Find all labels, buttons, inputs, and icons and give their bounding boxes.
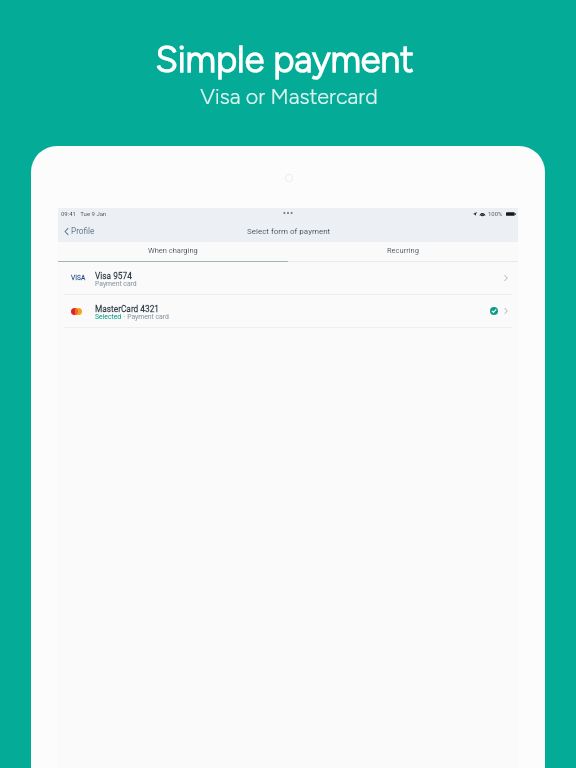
staticText: Visa 9574 [95, 271, 132, 281]
staticText: Visa or Mastercard [200, 84, 378, 110]
button[interactable]: When charging [58, 242, 288, 262]
staticText: MasterCard 4321 [95, 304, 160, 314]
button[interactable]: Recurring [288, 242, 518, 262]
staticText: Profile [71, 226, 95, 236]
staticText: Selected [95, 313, 122, 321]
other: Open card details [504, 308, 508, 314]
staticText: 09:41 Tue 9 Jan [61, 210, 107, 217]
button[interactable]: VISA [58, 262, 518, 294]
staticText: Payment card [95, 280, 137, 288]
button[interactable]: Profile [64, 226, 95, 236]
other: Open card details [504, 275, 508, 281]
staticText: Simple payment [155, 38, 414, 81]
staticText: · Payment card [122, 313, 169, 321]
button[interactable]: MasterCard 4321 [58, 295, 518, 327]
staticText: Recurring [387, 246, 419, 255]
staticText: VISA [71, 274, 86, 282]
staticText: When charging [148, 246, 198, 255]
staticText: 100% [488, 210, 503, 217]
staticText: Select form of payment [247, 227, 331, 236]
